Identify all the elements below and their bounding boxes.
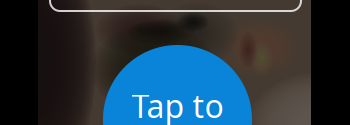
staticText: Tap to <box>131 84 223 125</box>
button[interactable]: Tap to <box>103 45 252 125</box>
